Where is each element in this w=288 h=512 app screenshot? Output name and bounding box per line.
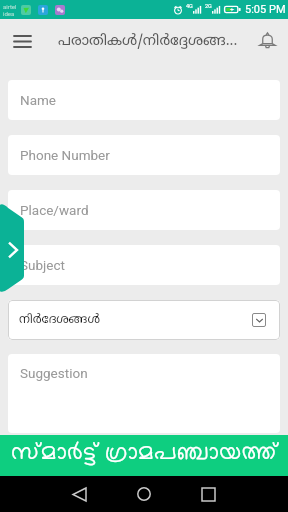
staticText: Place/ward <box>20 202 89 218</box>
staticText: Suggestion <box>20 365 88 381</box>
staticText: പരാതികൾ/നിർദ്ദേശങ്ങ... <box>58 32 238 50</box>
button[interactable]: Home <box>126 476 162 512</box>
staticText: 4G <box>186 3 193 9</box>
button[interactable]: Subject <box>8 245 280 285</box>
staticText: Subject <box>20 257 65 273</box>
button[interactable]: നിർദേശങ്ങൾ <box>8 300 280 340</box>
staticText: Phone Number <box>20 147 110 163</box>
button[interactable]: Open navigation drawer <box>0 203 24 293</box>
button[interactable]: Name <box>8 80 280 120</box>
button[interactable]: Back <box>61 476 97 512</box>
button[interactable]: Suggestion <box>8 354 280 433</box>
staticText: idea <box>3 10 15 17</box>
staticText: സ്മാർട്ട് ഗ്രാമപഞ്ചായത്ത് <box>11 441 278 468</box>
staticText: Name <box>20 92 56 108</box>
staticText: നിർദേശങ്ങൾ <box>19 313 101 328</box>
staticText: 5:05 PM <box>245 3 286 16</box>
staticText: 2G <box>205 3 212 9</box>
button[interactable]: Notifications <box>250 22 285 57</box>
button[interactable]: Menu <box>3 22 41 60</box>
button[interactable]: Recents <box>190 476 226 512</box>
button[interactable]: Place/ward <box>8 190 280 230</box>
button[interactable]: Phone Number <box>8 135 280 175</box>
staticText: airtel <box>3 3 17 10</box>
